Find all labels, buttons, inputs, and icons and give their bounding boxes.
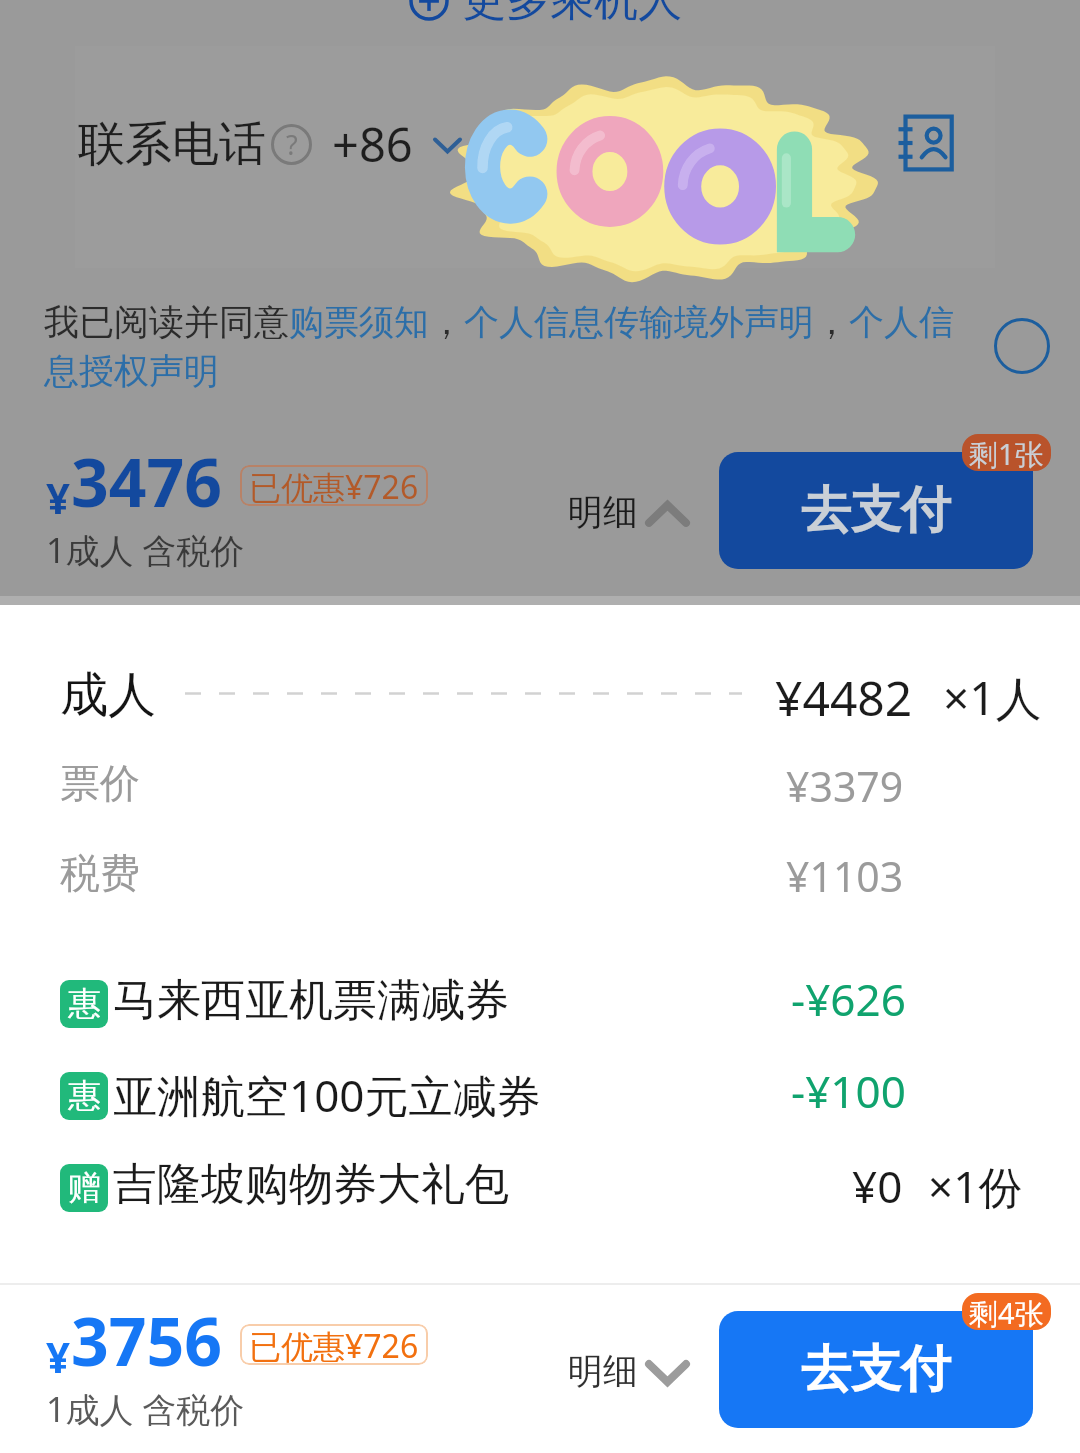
staticText: ×1份 <box>928 1156 1023 1216</box>
staticText: 成人 <box>60 665 156 725</box>
staticText: 惠 <box>68 983 101 1025</box>
staticText: 惠 <box>68 1075 101 1117</box>
staticText: +86 <box>332 112 413 176</box>
staticText: 马来西亚机票满减券 <box>113 973 509 1028</box>
staticText: ¥ <box>46 1328 71 1385</box>
staticText: ¥3379 <box>786 758 904 814</box>
staticText: ×1人 <box>943 666 1042 729</box>
staticText: 去支付 <box>801 479 951 542</box>
staticText: 已优惠¥726 <box>249 1324 419 1365</box>
staticText: 3756 <box>71 1295 223 1385</box>
button[interactable]: 明细 <box>568 490 686 534</box>
staticText: 赠 <box>68 1167 101 1209</box>
staticText: 更多乘机人 <box>462 0 682 28</box>
button[interactable]: 赠 <box>0 1157 1080 1225</box>
staticText: 明细 <box>568 490 638 534</box>
staticText: 1成人 含税价 <box>46 1386 245 1432</box>
staticText: ¥4482 <box>775 665 913 730</box>
button[interactable]: 明细 <box>568 1349 686 1393</box>
staticText: ? <box>286 126 298 163</box>
staticText: -¥626 <box>791 969 906 1029</box>
staticText: 票价 <box>60 758 140 808</box>
staticText: ¥1103 <box>786 848 904 904</box>
staticText: 联系电话 <box>78 115 266 174</box>
staticText: 剩4张 <box>969 1293 1044 1330</box>
staticText: ¥0 <box>852 1156 903 1216</box>
button[interactable]: Contacts <box>885 104 963 182</box>
button[interactable]: 去支付 <box>719 1311 1033 1428</box>
staticText: 亚洲航空100元立减券 <box>113 1065 541 1125</box>
staticText: -¥100 <box>791 1061 906 1121</box>
button[interactable]: 去支付 <box>719 452 1033 569</box>
staticText: 1成人 含税价 <box>46 527 245 573</box>
staticText: 吉隆坡购物券大礼包 <box>113 1157 509 1212</box>
button[interactable]: 惠 <box>0 973 1080 1041</box>
staticText: 3476 <box>71 436 223 526</box>
staticText: 剩1张 <box>969 434 1044 471</box>
staticText: ¥ <box>46 469 71 526</box>
staticText: 我已阅读并同意购票须知，个人信息传输境外声明，个人信息授权声明 <box>44 300 954 394</box>
staticText: 明细 <box>568 1349 638 1393</box>
staticText: 已优惠¥726 <box>249 465 419 506</box>
button[interactable]: 惠 <box>0 1065 1080 1133</box>
staticText: 去支付 <box>801 1338 951 1401</box>
staticText: 税费 <box>60 848 140 898</box>
